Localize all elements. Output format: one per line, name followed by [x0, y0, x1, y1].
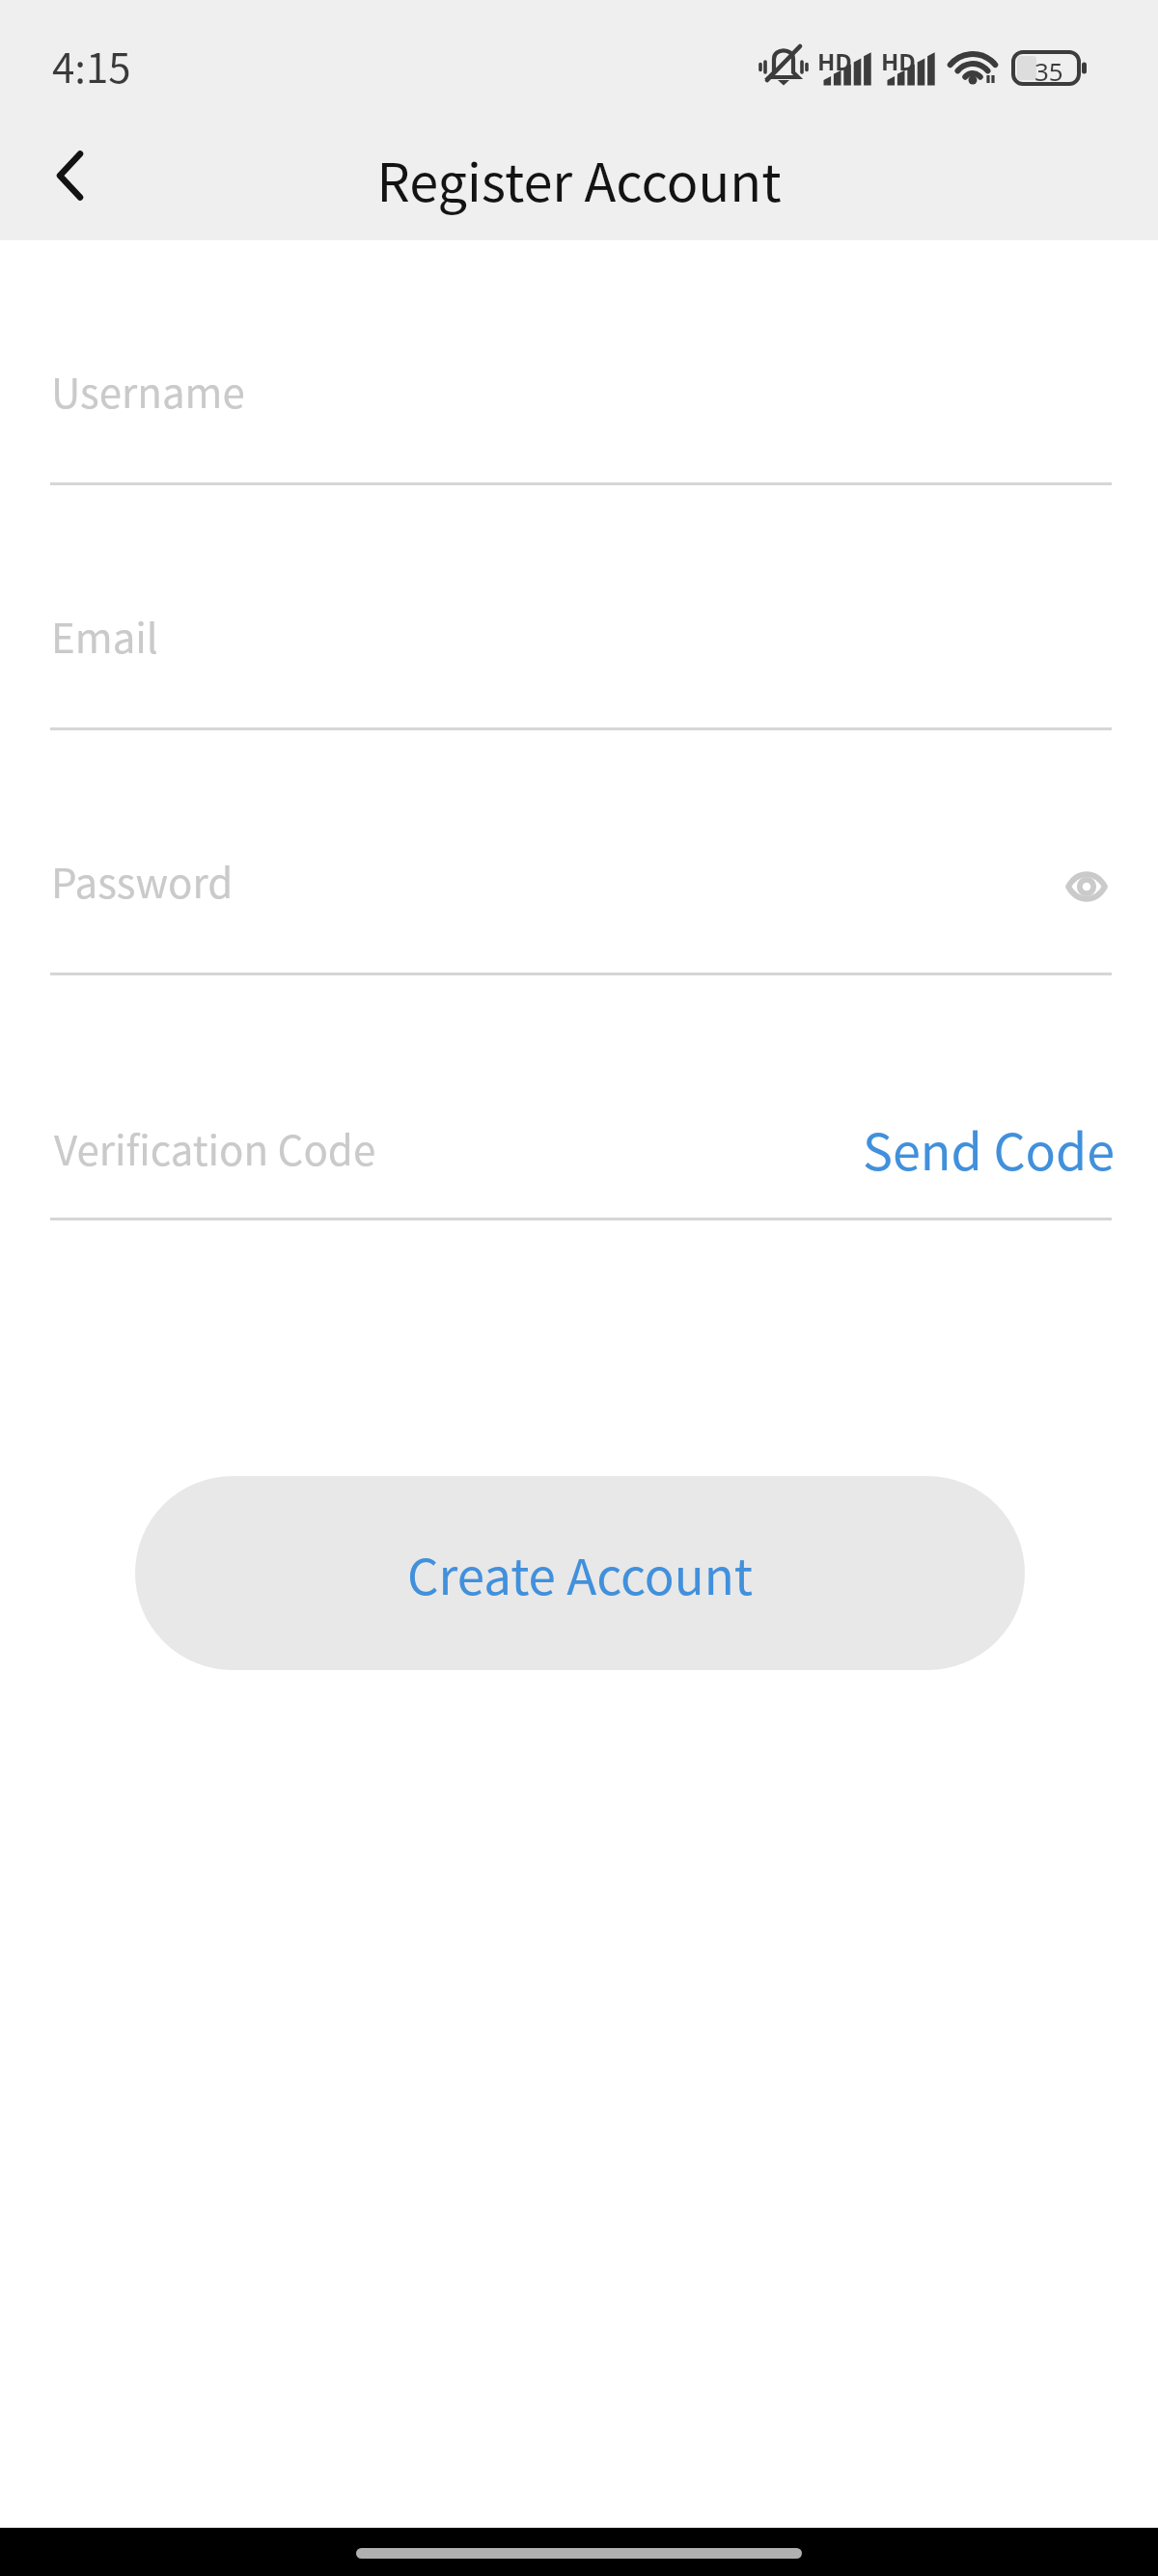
button[interactable]: Create Account: [135, 1476, 1025, 1670]
button[interactable]: Back: [15, 123, 122, 229]
button[interactable]: Password: [0, 730, 1158, 975]
staticText: Email: [51, 606, 158, 665]
staticText: 4:15: [52, 36, 131, 95]
staticText: Username: [51, 361, 245, 420]
button[interactable]: Verification Code: [0, 975, 1158, 1220]
staticText: Register Account: [0, 141, 1158, 216]
staticText: Password: [51, 851, 234, 910]
button[interactable]: Send Code: [863, 1112, 1116, 1185]
staticText: HD: [817, 45, 852, 77]
staticText: Create Account: [407, 1538, 754, 1609]
button[interactable]: Email: [0, 485, 1158, 730]
staticText: 35: [1034, 54, 1063, 88]
button[interactable]: Username: [0, 240, 1158, 485]
staticText: HD: [881, 45, 916, 77]
button[interactable]: Show password: [1053, 853, 1120, 920]
staticText: Verification Code: [54, 1118, 376, 1177]
